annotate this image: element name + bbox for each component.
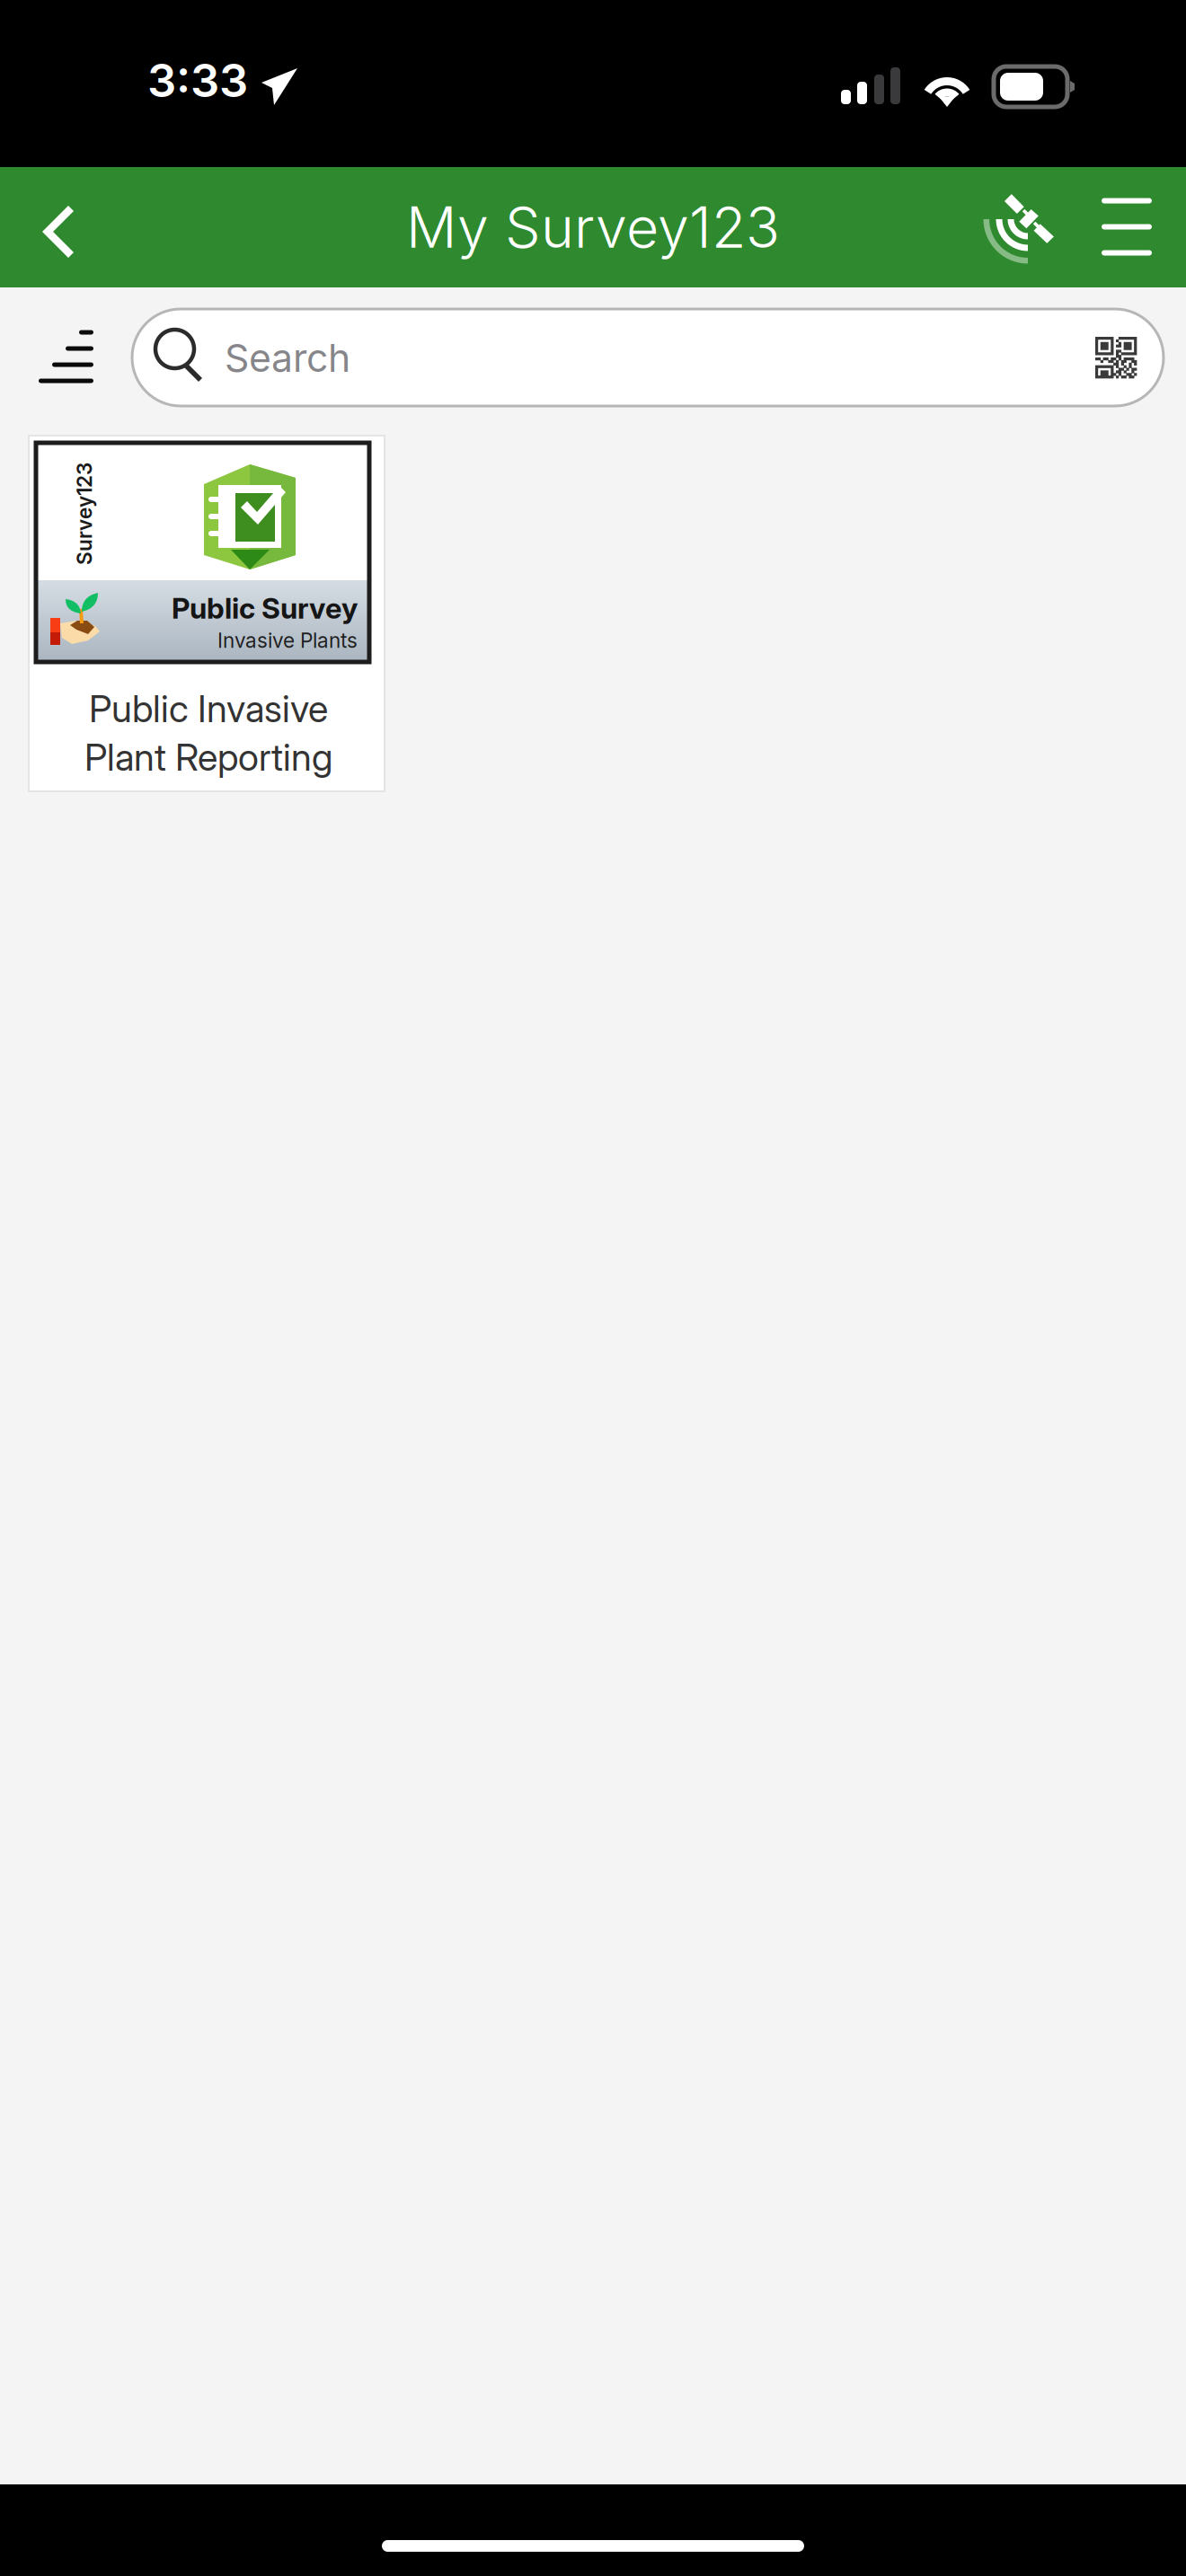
button[interactable]: Menu: [1076, 167, 1177, 287]
button[interactable]: Back: [0, 167, 113, 287]
staticText: Plant Reporting: [84, 735, 332, 780]
button[interactable]: Scan QR code: [1082, 309, 1150, 406]
staticText: My Survey123: [406, 193, 780, 261]
staticText: 3:33: [147, 53, 248, 108]
staticText: Search: [225, 335, 350, 381]
staticText: Invasive Plants: [217, 628, 358, 653]
button[interactable]: GPS status: [963, 167, 1076, 287]
button[interactable]: Sort: [0, 309, 132, 406]
button[interactable]: Public Invasive Plant Reporting: [29, 436, 385, 791]
staticText: Survey123: [33, 501, 136, 526]
staticText: Public Invasive: [89, 686, 328, 731]
staticText: Public Survey: [172, 591, 358, 625]
